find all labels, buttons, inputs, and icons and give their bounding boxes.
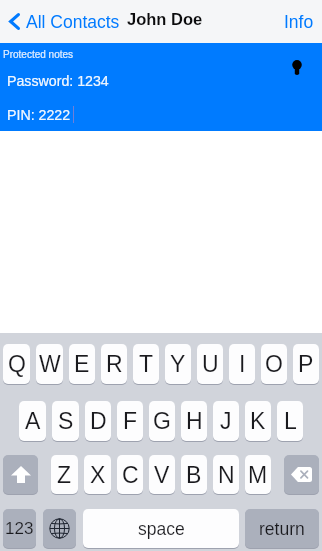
other: Protected [292, 60, 302, 75]
button[interactable]: S [52, 401, 79, 441]
staticText: O [265, 351, 283, 377]
button[interactable]: All Contacts [0, 0, 128, 43]
staticText: John Doe [127, 10, 203, 28]
staticText: Protected notes [3, 49, 74, 60]
staticText: space [138, 519, 185, 539]
button[interactable]: return [245, 509, 319, 548]
button[interactable]: H [181, 401, 207, 441]
staticText: L [284, 408, 297, 434]
button[interactable]: T [133, 344, 159, 384]
button[interactable]: X [84, 455, 111, 494]
staticText: return [259, 519, 305, 539]
staticText: PIN: 2222 [7, 107, 71, 123]
staticText: D [90, 408, 107, 434]
staticText: X [90, 462, 106, 488]
button[interactable]: 123 [3, 509, 36, 548]
staticText: All Contacts [26, 12, 120, 32]
staticText: N [218, 462, 235, 488]
button[interactable]: R [101, 344, 127, 384]
button[interactable]: D [85, 401, 111, 441]
button[interactable]: Y [165, 344, 191, 384]
button[interactable]: Backspace [284, 455, 319, 494]
button[interactable]: E [69, 344, 95, 384]
staticText: C [122, 462, 139, 488]
staticText: F [123, 408, 138, 434]
staticText: I [239, 351, 246, 377]
button[interactable]: G [149, 401, 175, 441]
staticText: U [202, 351, 219, 377]
button[interactable]: F [117, 401, 143, 441]
staticText: Z [57, 462, 72, 488]
button[interactable]: K [245, 401, 271, 441]
button[interactable]: Shift [3, 455, 38, 494]
button[interactable]: A [19, 401, 46, 441]
button[interactable]: V [149, 455, 175, 494]
staticText: E [74, 351, 90, 377]
staticText: S [58, 408, 74, 434]
staticText: Y [170, 351, 186, 377]
button[interactable]: L [277, 401, 303, 441]
staticText: A [25, 408, 41, 434]
button[interactable]: N [213, 455, 239, 494]
button[interactable]: space [83, 509, 239, 548]
button[interactable]: C [117, 455, 143, 494]
button[interactable]: Z [51, 455, 78, 494]
staticText: G [153, 408, 171, 434]
button[interactable]: M [245, 455, 271, 494]
staticText: T [139, 351, 154, 377]
staticText: Info [284, 12, 314, 32]
button[interactable]: B [181, 455, 207, 494]
staticText: 123 [5, 519, 34, 538]
button[interactable]: Q [3, 344, 30, 384]
button[interactable]: Info [274, 0, 322, 43]
staticText: M [248, 462, 268, 488]
button[interactable]: W [36, 344, 63, 384]
button[interactable]: I [229, 344, 255, 384]
staticText: P [298, 351, 314, 377]
button[interactable]: Change keyboard [43, 509, 76, 548]
staticText: R [106, 351, 123, 377]
staticText: V [154, 462, 170, 488]
button[interactable]: U [197, 344, 223, 384]
staticText: K [250, 408, 266, 434]
staticText: W [39, 351, 61, 377]
staticText: Password: 1234 [7, 73, 109, 89]
button[interactable]: O [261, 344, 287, 384]
staticText: Q [8, 351, 26, 377]
staticText: B [186, 462, 202, 488]
button[interactable]: P [293, 344, 319, 384]
button[interactable]: J [213, 401, 239, 441]
staticText: J [220, 408, 232, 434]
staticText: H [186, 408, 203, 434]
